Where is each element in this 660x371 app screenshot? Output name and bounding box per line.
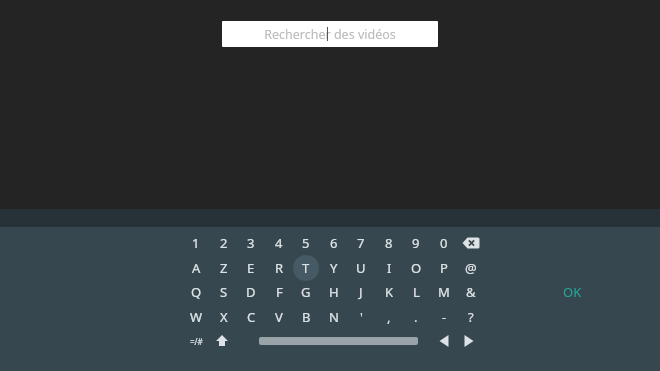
staticText: K	[385, 283, 394, 301]
button[interactable]: Y	[321, 256, 347, 280]
button[interactable]: @	[458, 256, 484, 280]
staticText: OK	[563, 283, 582, 301]
button[interactable]: T	[293, 256, 319, 280]
button[interactable]: Move right	[456, 329, 482, 353]
button[interactable]: 7	[348, 231, 374, 255]
button[interactable]: Z	[211, 256, 237, 280]
button[interactable]: G	[293, 280, 319, 304]
staticText: P	[440, 259, 448, 277]
button[interactable]: .	[403, 305, 429, 329]
staticText: ,	[387, 308, 391, 326]
button[interactable]: =/#	[182, 330, 210, 352]
staticText: E	[247, 259, 255, 277]
button[interactable]: F	[266, 280, 292, 304]
staticText: X	[220, 308, 228, 326]
button[interactable]: 4	[266, 231, 292, 255]
button[interactable]: V	[266, 305, 292, 329]
button[interactable]: 2	[211, 231, 237, 255]
button[interactable]: 9	[403, 231, 429, 255]
button[interactable]: O	[403, 256, 429, 280]
staticText: Z	[220, 259, 228, 277]
button[interactable]: ,	[376, 305, 402, 329]
staticText: A	[192, 259, 201, 277]
button[interactable]: Shift	[209, 329, 235, 353]
staticText: R	[275, 259, 284, 277]
button[interactable]: E	[238, 256, 264, 280]
staticText: I	[387, 259, 392, 277]
button[interactable]: -	[431, 305, 457, 329]
staticText: -	[442, 308, 447, 326]
staticText: S	[220, 283, 228, 301]
button[interactable]: Space	[259, 337, 418, 345]
button[interactable]: ?	[458, 305, 484, 329]
staticText: &	[466, 283, 476, 301]
staticText: W	[190, 308, 203, 326]
staticText: O	[411, 259, 422, 277]
button[interactable]: 6	[321, 231, 347, 255]
button[interactable]: 5	[293, 231, 319, 255]
staticText: 9	[412, 234, 420, 252]
staticText: 8	[385, 234, 393, 252]
button[interactable]: N	[321, 305, 347, 329]
staticText: 5	[302, 234, 310, 252]
button[interactable]: S	[211, 280, 237, 304]
button[interactable]: J	[348, 280, 374, 304]
button[interactable]: K	[376, 280, 402, 304]
button[interactable]: M	[431, 280, 457, 304]
staticText: .	[414, 308, 418, 326]
staticText: D	[246, 283, 256, 301]
button[interactable]: Q	[183, 280, 209, 304]
button[interactable]: C	[238, 305, 264, 329]
staticText: N	[329, 308, 339, 326]
staticText: ?	[468, 308, 474, 326]
staticText: T	[302, 259, 310, 277]
button[interactable]: B	[293, 305, 319, 329]
button[interactable]: Move left	[431, 329, 457, 353]
staticText: 3	[247, 234, 255, 252]
staticText: B	[302, 308, 311, 326]
button[interactable]: &	[458, 280, 484, 304]
button[interactable]: R	[266, 256, 292, 280]
staticText: G	[301, 283, 311, 301]
staticText: Rechercher des vidéos	[222, 26, 438, 43]
staticText: 2	[220, 234, 228, 252]
staticText: L	[413, 283, 420, 301]
button[interactable]: I	[376, 256, 402, 280]
staticText: J	[359, 283, 363, 301]
staticText: 4	[275, 234, 283, 252]
button[interactable]: Backspace	[458, 231, 484, 255]
button[interactable]: Rechercher des vidéos	[222, 21, 438, 47]
staticText: '	[360, 308, 363, 326]
button[interactable]: X	[211, 305, 237, 329]
button[interactable]: H	[321, 280, 347, 304]
button[interactable]: A	[183, 256, 209, 280]
button[interactable]: U	[348, 256, 374, 280]
staticText: U	[356, 259, 366, 277]
button[interactable]: OK	[548, 280, 596, 304]
button[interactable]: 3	[238, 231, 264, 255]
button[interactable]: 8	[376, 231, 402, 255]
staticText: F	[276, 283, 283, 301]
staticText: C	[247, 308, 256, 326]
button[interactable]: 1	[183, 231, 209, 255]
staticText: 7	[357, 234, 365, 252]
staticText: Q	[191, 283, 202, 301]
button[interactable]: P	[431, 256, 457, 280]
staticText: 0	[440, 234, 448, 252]
button[interactable]: '	[348, 305, 374, 329]
staticText: @	[465, 259, 477, 277]
button[interactable]: D	[238, 280, 264, 304]
staticText: 1	[192, 234, 200, 252]
button[interactable]: L	[403, 280, 429, 304]
staticText: Y	[330, 259, 338, 277]
staticText: V	[275, 308, 283, 326]
staticText: M	[438, 283, 450, 301]
staticText: =/#	[190, 336, 203, 347]
staticText: H	[329, 283, 339, 301]
staticText: 6	[330, 234, 338, 252]
button[interactable]: W	[183, 305, 209, 329]
button[interactable]: 0	[431, 231, 457, 255]
